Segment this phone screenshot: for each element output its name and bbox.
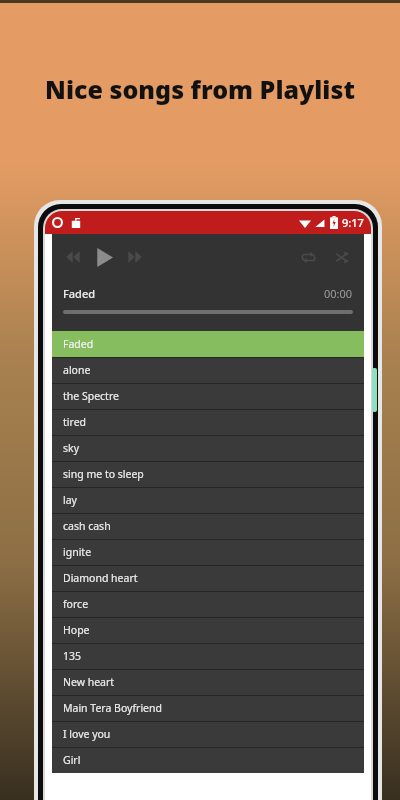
- staticText: Diamond heart: [63, 571, 138, 585]
- staticText: New heart: [63, 675, 115, 689]
- button[interactable]: Shuffle: [330, 245, 354, 269]
- staticText: cash cash: [63, 519, 111, 533]
- staticText: Girl: [63, 753, 81, 767]
- button[interactable]: sing me to sleep: [52, 461, 364, 487]
- staticText: lay: [63, 493, 77, 507]
- staticText: sing me to sleep: [63, 467, 144, 481]
- staticText: Faded: [63, 286, 96, 301]
- staticText: the Spectre: [63, 389, 119, 403]
- button[interactable]: New heart: [52, 669, 364, 695]
- staticText: 9:17: [342, 215, 364, 230]
- staticText: ignite: [63, 545, 92, 559]
- button[interactable]: Girl: [52, 747, 364, 773]
- staticText: 135: [63, 649, 82, 663]
- staticText: 00:00: [324, 286, 353, 301]
- staticText: alone: [63, 363, 91, 377]
- button[interactable]: Diamond heart: [52, 565, 364, 591]
- staticText: tired: [63, 415, 87, 429]
- button[interactable]: Faded: [52, 331, 364, 357]
- staticText: force: [63, 597, 89, 611]
- staticText: Hope: [63, 623, 90, 637]
- button[interactable]: I love you: [52, 721, 364, 747]
- button[interactable]: Hope: [52, 617, 364, 643]
- button[interactable]: tired: [52, 409, 364, 435]
- staticText: Faded: [63, 337, 94, 351]
- staticText: sky: [63, 441, 79, 455]
- button[interactable]: Next: [124, 246, 146, 268]
- button[interactable]: 135: [52, 643, 364, 669]
- staticText: I love you: [63, 727, 111, 741]
- staticText: Nice songs from Playlist: [45, 72, 355, 106]
- button[interactable]: the Spectre: [52, 383, 364, 409]
- button[interactable]: force: [52, 591, 364, 617]
- button[interactable]: ignite: [52, 539, 364, 565]
- button[interactable]: cash cash: [52, 513, 364, 539]
- button[interactable]: sky: [52, 435, 364, 461]
- button[interactable]: Play: [90, 243, 118, 271]
- button[interactable]: Main Tera Boyfriend: [52, 695, 364, 721]
- staticText: Main Tera Boyfriend: [63, 701, 162, 715]
- button[interactable]: lay: [52, 487, 364, 513]
- button[interactable]: Previous: [62, 246, 84, 268]
- button[interactable]: alone: [52, 357, 364, 383]
- button[interactable]: Repeat: [296, 245, 320, 269]
